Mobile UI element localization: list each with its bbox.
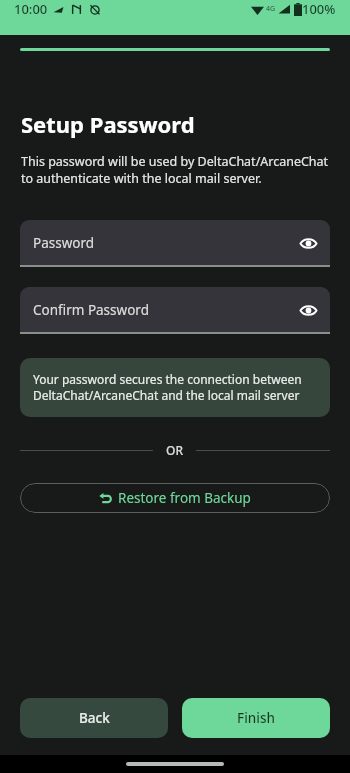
button[interactable]: Show password xyxy=(297,299,319,321)
staticText: Confirm Password xyxy=(33,301,297,319)
staticText: 10:00 xyxy=(14,0,48,18)
button[interactable]: Password xyxy=(20,220,330,265)
staticText: Back xyxy=(79,709,110,727)
button[interactable]: Restore from Backup xyxy=(20,483,330,513)
staticText: This password will be used by DeltaChat/… xyxy=(21,153,329,187)
button[interactable]: Back xyxy=(20,698,168,738)
staticText: Restore from Backup xyxy=(118,489,251,507)
staticText: Finish xyxy=(237,709,275,727)
staticText: 100% xyxy=(302,0,336,18)
staticText: Password xyxy=(33,234,297,252)
button[interactable]: Finish xyxy=(182,698,330,738)
staticText: 4G xyxy=(266,4,276,14)
staticText: OR xyxy=(166,442,183,458)
button[interactable]: Confirm Password xyxy=(20,287,330,332)
staticText: Your password secures the connection bet… xyxy=(33,371,317,404)
button[interactable]: Show password xyxy=(297,232,319,254)
staticText: Setup Password xyxy=(21,109,195,139)
